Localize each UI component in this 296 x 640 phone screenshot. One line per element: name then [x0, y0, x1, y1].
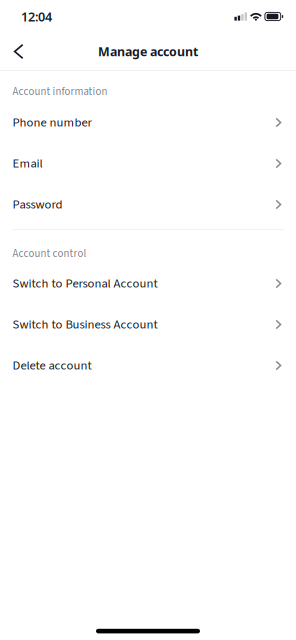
button[interactable]: Switch to Personal Account — [0, 263, 296, 304]
staticText: Password — [13, 195, 63, 213]
staticText: Account control — [13, 246, 87, 261]
button[interactable]: Back — [0, 33, 40, 70]
staticText: Switch to Business Account — [13, 315, 158, 333]
staticText: 12:04 — [21, 8, 52, 25]
button[interactable]: Password — [0, 184, 296, 225]
staticText: Manage account — [98, 43, 198, 60]
button[interactable]: Delete account — [0, 345, 296, 386]
button[interactable]: Phone number — [0, 102, 296, 143]
staticText: Email — [13, 154, 43, 172]
staticText: Phone number — [13, 113, 92, 131]
button[interactable]: Switch to Business Account — [0, 304, 296, 345]
staticText: Switch to Personal Account — [13, 274, 158, 292]
staticText: Delete account — [13, 356, 92, 374]
button[interactable]: Email — [0, 143, 296, 184]
staticText: Account information — [13, 84, 108, 99]
